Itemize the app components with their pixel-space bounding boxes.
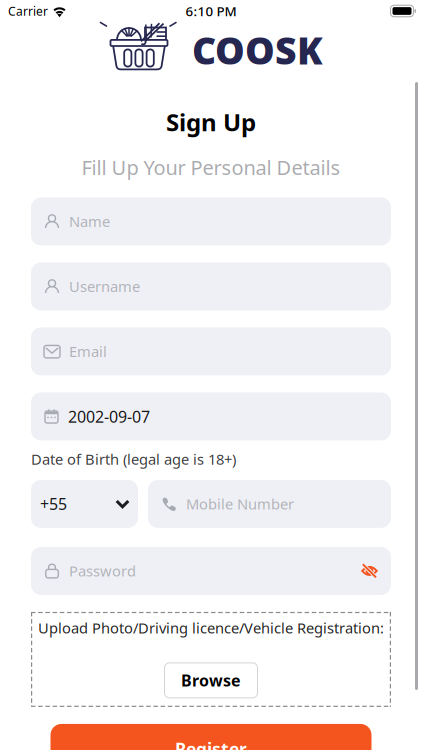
button[interactable]: Mobile Number (148, 480, 391, 528)
staticText: 6:10 PM (185, 2, 236, 20)
staticText: Password (69, 561, 136, 581)
staticText: COOSK (192, 25, 323, 75)
staticText: Carrier (8, 3, 48, 19)
staticText: Date of Birth (legal age is 18+) (31, 449, 236, 469)
button[interactable]: Email (31, 327, 391, 375)
button[interactable]: 2002-09-07 (31, 392, 391, 440)
staticText: Upload Photo/Driving licence/Vehicle Reg… (38, 618, 384, 638)
staticText: +55 (40, 493, 67, 514)
staticText: Browse (181, 670, 241, 691)
staticText: Sign Up (166, 106, 256, 138)
staticText: 2002-09-07 (68, 406, 150, 427)
staticText: Username (69, 277, 140, 296)
staticText: Name (69, 212, 110, 231)
button[interactable]: Browse (164, 663, 257, 698)
staticText: Fill Up Your Personal Details (81, 154, 340, 180)
staticText: Register (175, 737, 247, 750)
button[interactable]: Username (31, 262, 391, 310)
button[interactable]: Name (31, 197, 391, 245)
button[interactable]: Password (31, 547, 391, 595)
staticText: Email (69, 342, 107, 361)
button[interactable]: +55 (31, 480, 138, 528)
staticText: Mobile Number (186, 494, 294, 514)
button[interactable]: Register (50, 724, 371, 750)
